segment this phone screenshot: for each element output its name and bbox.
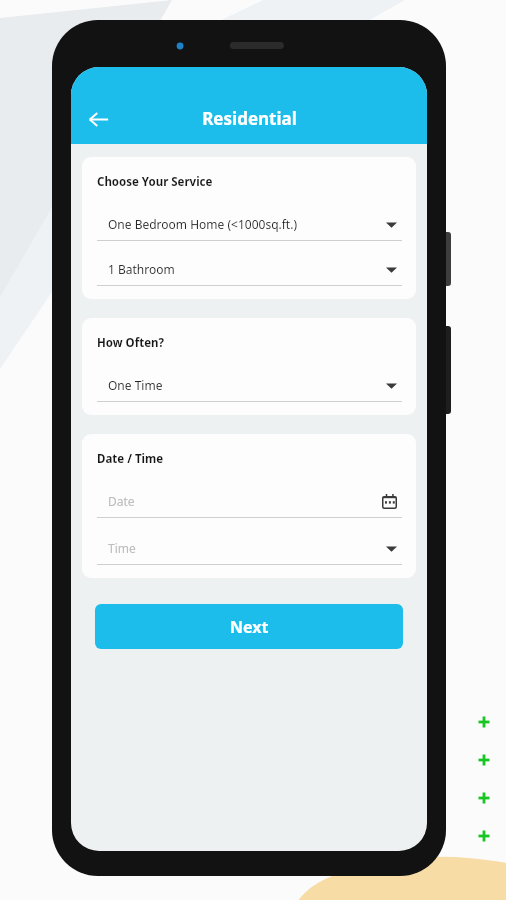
button[interactable]: Date — [97, 485, 402, 518]
staticText: One Bedroom Home (<1000sq.ft.) — [108, 216, 298, 232]
staticText: One Time — [108, 377, 163, 393]
button[interactable]: Next — [95, 604, 403, 649]
staticText: Date — [108, 493, 135, 509]
button[interactable]: 1 Bathroom — [97, 253, 402, 286]
staticText: Date / Time — [97, 451, 164, 467]
button[interactable]: One Time — [97, 369, 402, 402]
button[interactable]: Back — [76, 97, 120, 141]
staticText: Next — [230, 616, 269, 638]
button[interactable]: One Bedroom Home (<1000sq.ft.) — [97, 208, 402, 241]
staticText: 1 Bathroom — [108, 261, 175, 277]
other: decoration — [470, 712, 500, 857]
staticText: Time — [108, 540, 136, 556]
staticText: Residential — [202, 107, 297, 130]
staticText: Choose Your Service — [97, 174, 213, 190]
staticText: How Often? — [97, 335, 164, 351]
button[interactable]: Time — [97, 532, 402, 565]
